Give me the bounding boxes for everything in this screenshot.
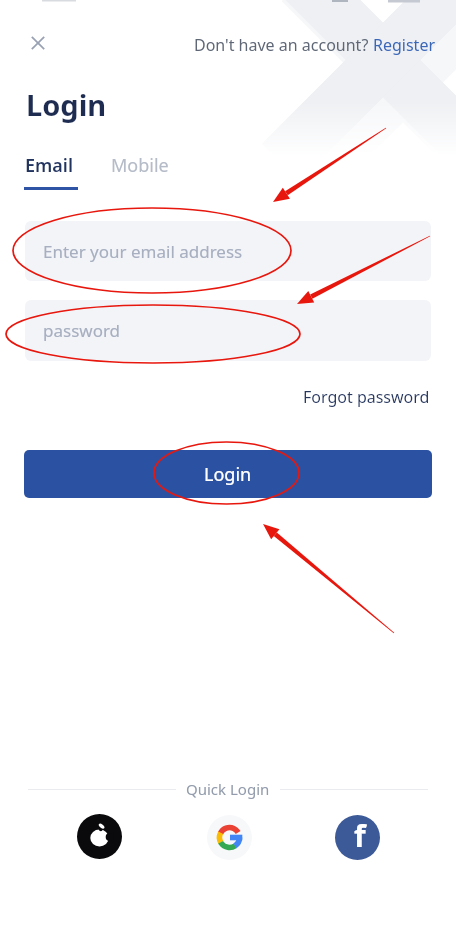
button[interactable]: Enter your email address [25,221,431,281]
button[interactable] [207,815,252,860]
staticText: Login [26,85,107,124]
staticText: Forgot password [303,386,430,408]
button[interactable]: Email [25,153,74,178]
staticText: Login [204,462,252,487]
staticText: Enter your email address [43,240,243,263]
button[interactable] [26,31,50,55]
staticText: Register [373,34,436,56]
button[interactable]: Forgot password [303,386,430,408]
staticText: f [354,815,366,856]
button[interactable]: Mobile [111,153,169,178]
staticText: Email [25,153,74,178]
button[interactable] [77,814,122,859]
staticText: password [43,319,121,342]
button[interactable]: Login [24,450,432,498]
button[interactable]: password [25,300,431,361]
staticText: Quick Login [186,779,270,799]
button[interactable]: f [335,815,380,860]
staticText: Don't have an account? [194,34,373,56]
staticText: Mobile [111,153,169,178]
button[interactable]: Don't have an account? [194,34,436,56]
